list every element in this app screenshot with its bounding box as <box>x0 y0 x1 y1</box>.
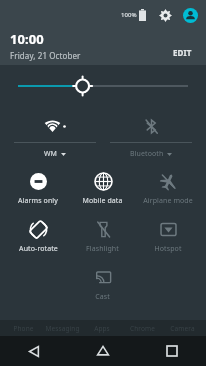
staticText: Auto-rotate <box>19 244 58 254</box>
staticText: Airplane mode <box>143 196 193 206</box>
staticText: Hotspot <box>154 244 182 254</box>
button[interactable]: User account <box>180 5 200 25</box>
staticText: Alarms only <box>18 196 58 206</box>
staticText: Cast <box>95 292 110 302</box>
button[interactable]: Airplane mode <box>135 169 200 208</box>
staticText: Messaging <box>45 324 80 333</box>
button[interactable]: Home <box>68 336 137 366</box>
button[interactable]: Hotspot <box>135 217 200 256</box>
button[interactable]: Brightness <box>0 65 206 107</box>
button[interactable]: Messaging <box>43 324 82 333</box>
button[interactable]: Chrome <box>122 324 162 333</box>
button[interactable]: Back <box>0 336 68 366</box>
staticText: Phone <box>13 324 34 333</box>
staticText: Chrome <box>130 324 155 333</box>
button[interactable]: Auto-rotate <box>6 217 70 256</box>
staticText: Camera <box>170 324 195 333</box>
button[interactable]: Wi-Fi <box>14 113 96 159</box>
button[interactable]: Settings <box>155 5 175 25</box>
button[interactable]: EDIT <box>169 44 196 61</box>
button[interactable]: Phone <box>4 324 43 333</box>
staticText: Flashlight <box>86 244 119 254</box>
button[interactable]: Cast <box>70 265 135 304</box>
button[interactable]: Alarms only <box>6 169 70 208</box>
staticText: Mobile data <box>82 196 123 206</box>
staticText: Bluetooth <box>130 149 164 159</box>
button[interactable]: Bluetooth <box>110 113 192 159</box>
button[interactable]: Mobile data <box>70 169 135 208</box>
staticText: WM <box>44 149 58 159</box>
staticText: Friday, 21 October <box>10 50 81 61</box>
staticText: EDIT <box>173 47 192 58</box>
button[interactable]: Camera <box>162 324 202 333</box>
staticText: 100% <box>121 11 137 19</box>
button[interactable]: Flashlight <box>70 217 135 256</box>
staticText: 10:00 <box>10 30 44 48</box>
staticText: Apps <box>94 324 110 333</box>
button[interactable]: Recent apps <box>137 336 206 366</box>
button[interactable]: Apps <box>82 324 122 333</box>
